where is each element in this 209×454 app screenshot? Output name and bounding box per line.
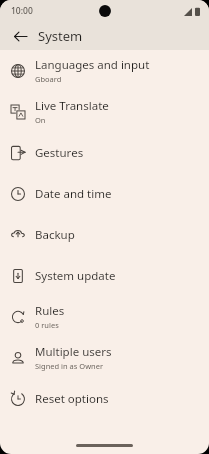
staticText: Gestures: [35, 145, 84, 161]
staticText: Gboard: [35, 74, 62, 84]
staticText: Date and time: [35, 186, 112, 202]
staticText: Languages and input: [35, 57, 150, 73]
staticText: Signed in as Owner: [35, 361, 104, 371]
staticText: 0 rules: [35, 320, 59, 330]
staticText: On: [35, 115, 46, 125]
button[interactable]: Live Translate: [0, 91, 209, 132]
staticText: Reset options: [35, 391, 109, 407]
button[interactable]: Gestures: [0, 132, 209, 173]
staticText: 10:00: [11, 5, 33, 17]
staticText: Backup: [35, 227, 75, 243]
staticText: Rules: [35, 303, 65, 319]
staticText: Live Translate: [35, 98, 109, 114]
staticText: Multiple users: [35, 344, 112, 360]
button[interactable]: Reset options: [0, 378, 209, 419]
button[interactable]: Multiple users: [0, 337, 209, 378]
staticText: System update: [35, 268, 116, 284]
button[interactable]: Rules: [0, 296, 209, 337]
button[interactable]: Backup: [0, 214, 209, 255]
staticText: System: [38, 27, 83, 45]
button[interactable]: System update: [0, 255, 209, 296]
button[interactable]: Date and time: [0, 173, 209, 214]
button[interactable]: Languages and input: [0, 50, 209, 91]
button[interactable]: Back: [8, 24, 32, 48]
